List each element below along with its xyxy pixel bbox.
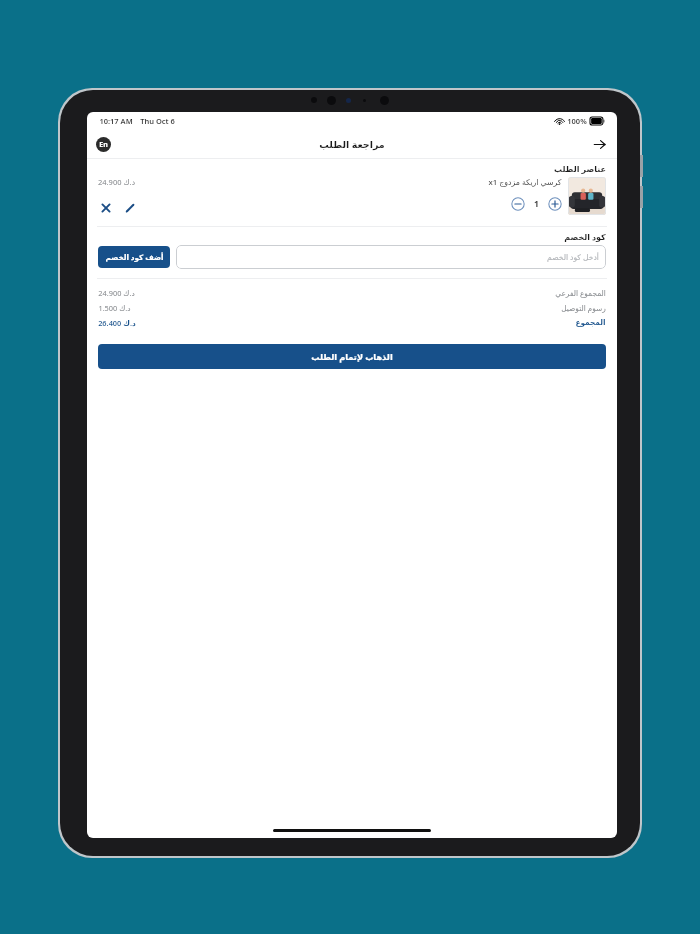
staticText: كود الخصم xyxy=(564,231,606,242)
staticText: مراجعة الطلب xyxy=(319,138,385,151)
staticText: 24.900 د.ك xyxy=(98,177,135,187)
button[interactable]: Decrease quantity xyxy=(511,197,525,211)
button[interactable]: أضف كود الخصم xyxy=(98,246,170,268)
button[interactable]: Remove item xyxy=(98,200,114,216)
staticText: 1.500 د.ك xyxy=(98,303,131,313)
staticText: 24.900 د.ك xyxy=(98,288,135,298)
staticText: 26.400 د.ك xyxy=(98,318,136,328)
staticText: المجموع الفرعي xyxy=(555,288,606,298)
staticText: 10:17 AM xyxy=(99,116,133,126)
staticText: أضف كود الخصم xyxy=(105,252,164,262)
button[interactable]: Switch language to English xyxy=(96,137,111,152)
staticText: x1 كرسي اريكة مزدوج xyxy=(488,177,562,188)
button[interactable]: Edit item xyxy=(122,200,138,216)
button[interactable]: الذهاب لإتمام الطلب xyxy=(98,344,606,369)
button[interactable]: Increase quantity xyxy=(548,197,562,211)
staticText: المجموع xyxy=(575,318,606,327)
staticText: رسوم التوصيل xyxy=(561,303,606,313)
staticText: 100% xyxy=(567,116,587,126)
staticText: أدخل كود الخصم xyxy=(547,252,599,262)
button[interactable]: Product image: double inflatable sofa ch… xyxy=(568,177,606,215)
staticText: 1 xyxy=(534,198,539,210)
staticText: Thu Oct 6 xyxy=(140,116,175,126)
staticText: الذهاب لإتمام الطلب xyxy=(311,351,393,362)
button[interactable]: Back xyxy=(589,134,609,154)
staticText: En xyxy=(99,140,108,150)
staticText: عناصر الطلب xyxy=(554,163,606,174)
button[interactable]: أدخل كود الخصم xyxy=(176,245,606,269)
